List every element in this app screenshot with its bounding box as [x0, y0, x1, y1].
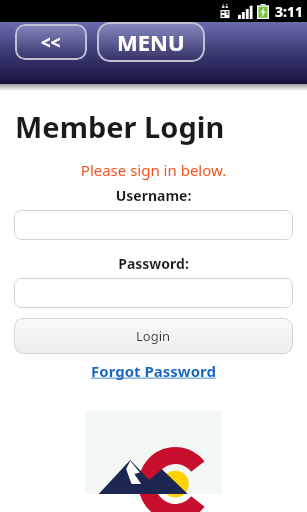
staticText: Please sign in below.	[0, 160, 307, 180]
staticText: Member Login	[15, 107, 225, 146]
staticText: <<	[41, 31, 61, 54]
button[interactable]	[14, 210, 293, 240]
staticText: MENU	[117, 27, 185, 57]
button[interactable]: Back	[15, 24, 87, 60]
staticText: 3:11	[275, 2, 303, 21]
staticText: Login	[136, 327, 171, 345]
staticText: Password:	[0, 254, 307, 273]
button[interactable]: Login	[14, 318, 293, 354]
button[interactable]: Forgot Password	[0, 361, 307, 381]
staticText: Username:	[0, 186, 307, 205]
button[interactable]	[14, 278, 293, 308]
button[interactable]: MENU	[97, 22, 205, 62]
